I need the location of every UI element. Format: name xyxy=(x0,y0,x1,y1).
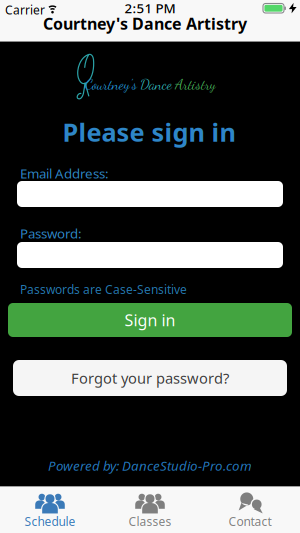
staticText: Carrier xyxy=(5,2,45,18)
staticText: Passwords are Case-Sensitive xyxy=(20,281,187,297)
staticText: Dance xyxy=(140,75,172,93)
button[interactable]: Classes xyxy=(100,487,200,532)
staticText: Artistry xyxy=(175,75,216,93)
staticText: Please sign in xyxy=(62,115,235,149)
staticText: Courtney's Dance Artistry xyxy=(43,13,247,34)
staticText: Schedule xyxy=(24,513,75,529)
staticText: Password: xyxy=(20,224,82,242)
staticText: Classes xyxy=(128,513,171,529)
staticText: Sign in xyxy=(124,309,175,331)
staticText: Powered by: DanceStudio-Pro.com xyxy=(48,457,252,474)
staticText: Courtney's xyxy=(85,75,137,93)
button[interactable]: Contact xyxy=(200,487,300,532)
staticText: Contact xyxy=(228,513,271,529)
staticText: Email Address: xyxy=(20,164,109,182)
staticText: Forgot your password? xyxy=(71,368,229,388)
button[interactable]: Forgot your password? xyxy=(13,360,287,396)
staticText: 2:51 PM xyxy=(124,0,175,17)
button[interactable] xyxy=(17,242,283,268)
button[interactable]: Sign in xyxy=(8,303,292,337)
button[interactable] xyxy=(17,181,283,207)
button[interactable]: Schedule xyxy=(0,487,100,532)
button[interactable]: Powered by: DanceStudio-Pro.com xyxy=(48,457,252,474)
